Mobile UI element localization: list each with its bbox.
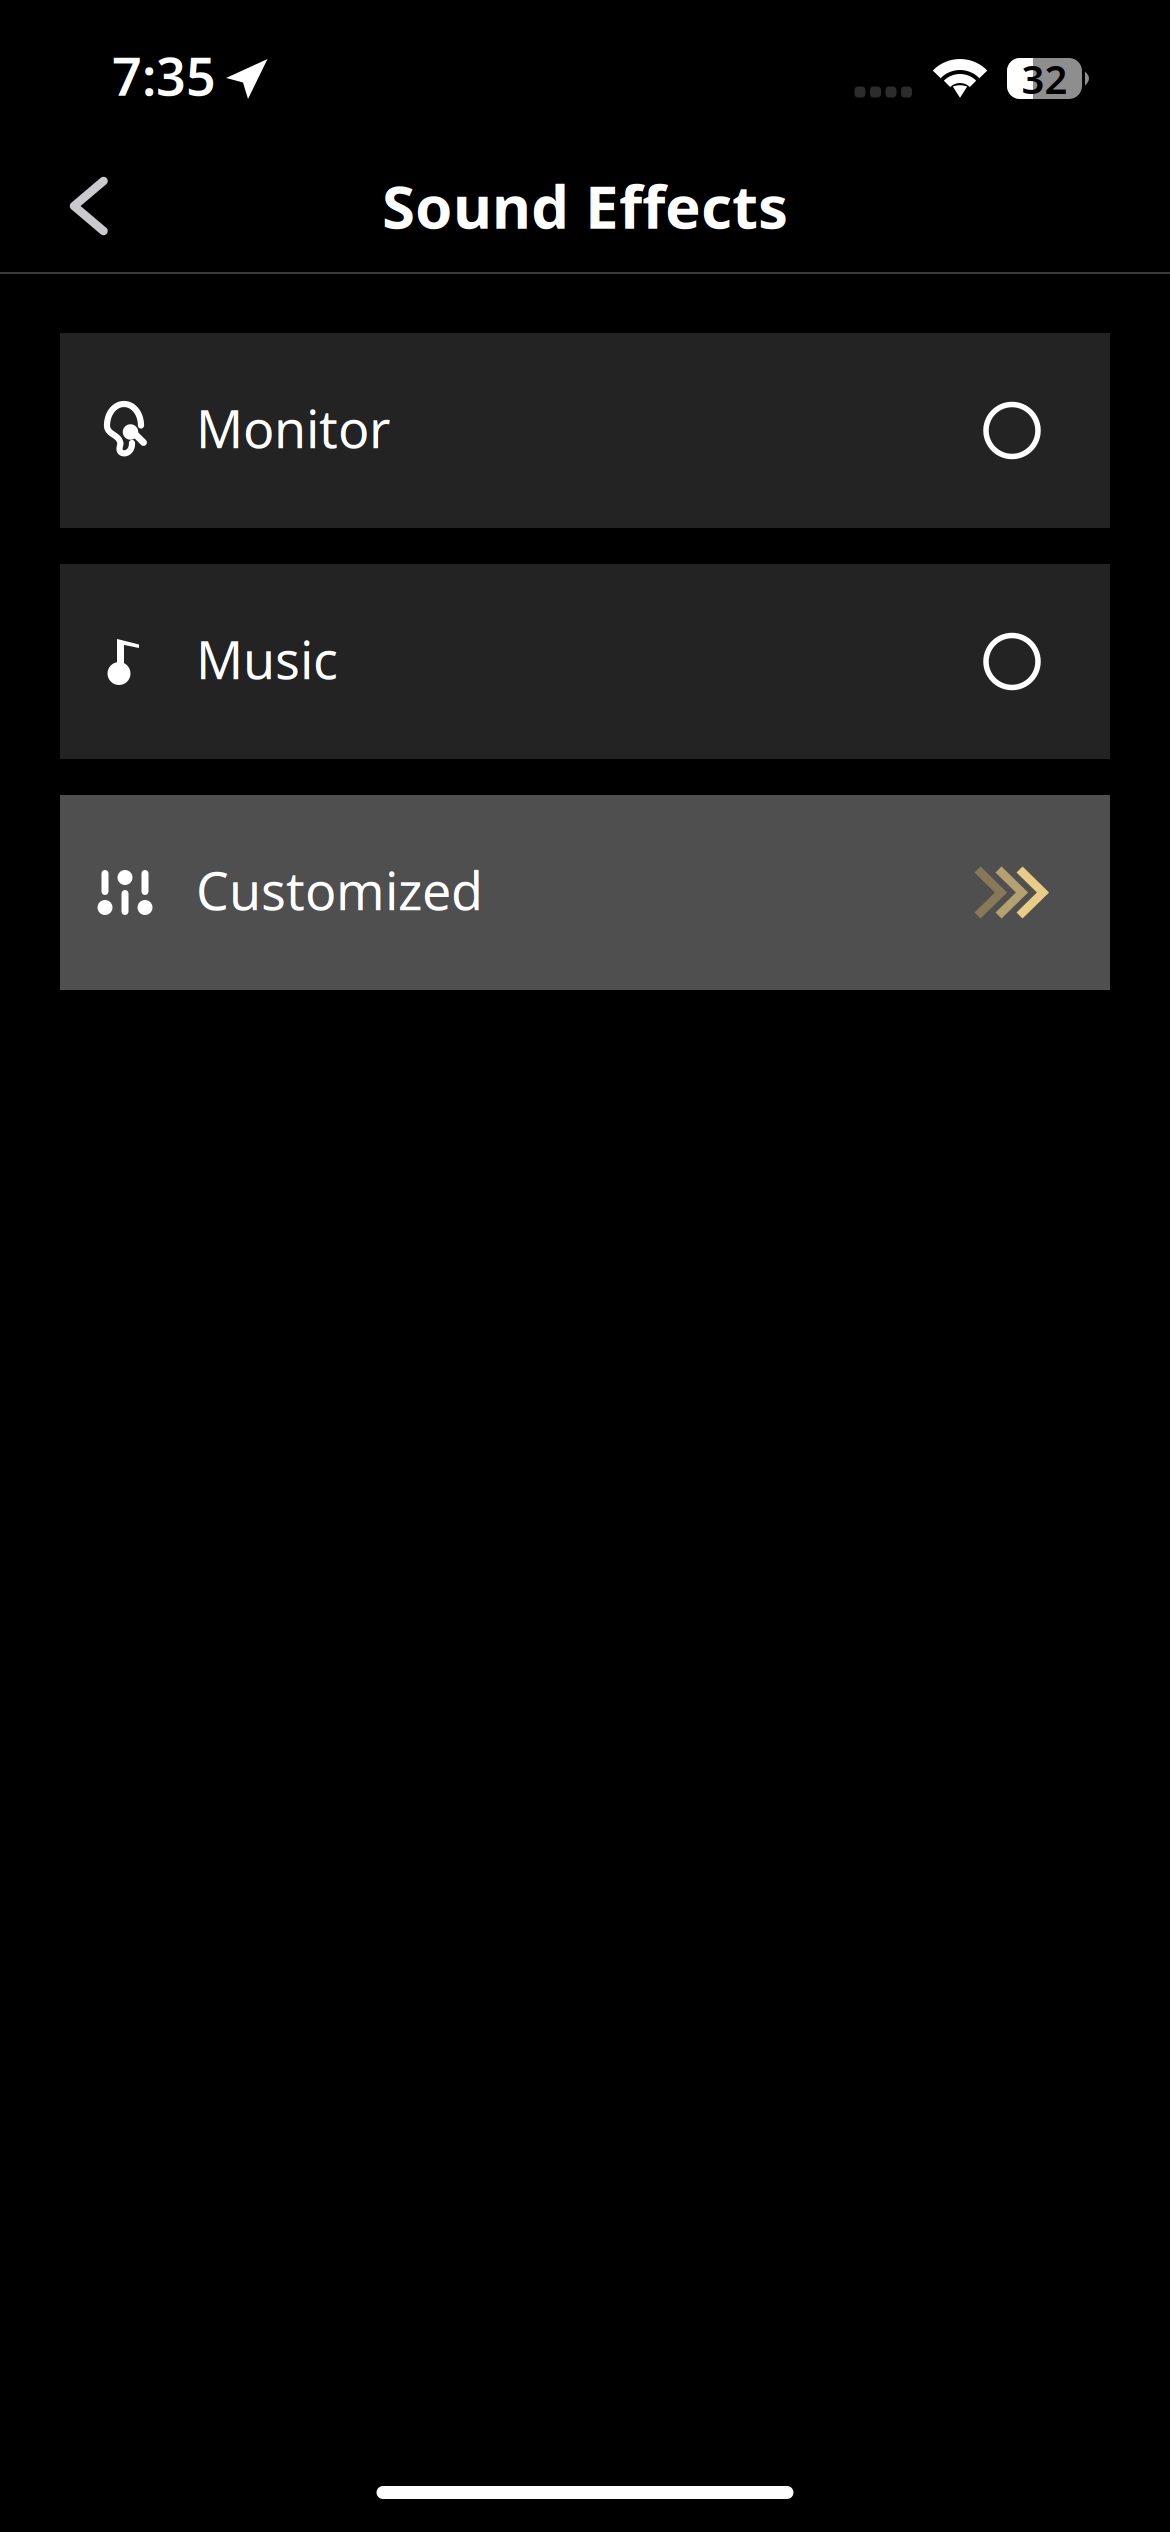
staticText: Sound Effects — [382, 166, 788, 245]
staticText: Music — [196, 624, 338, 694]
button[interactable]: Music — [60, 564, 1110, 759]
staticText: Customized — [196, 855, 483, 925]
staticText: 7:35 — [112, 41, 216, 110]
staticText: 32 — [1021, 52, 1067, 105]
staticText: Monitor — [196, 393, 390, 463]
button[interactable]: Customized — [60, 795, 1110, 990]
button[interactable]: Back — [0, 146, 159, 258]
button[interactable]: Monitor — [60, 333, 1110, 528]
